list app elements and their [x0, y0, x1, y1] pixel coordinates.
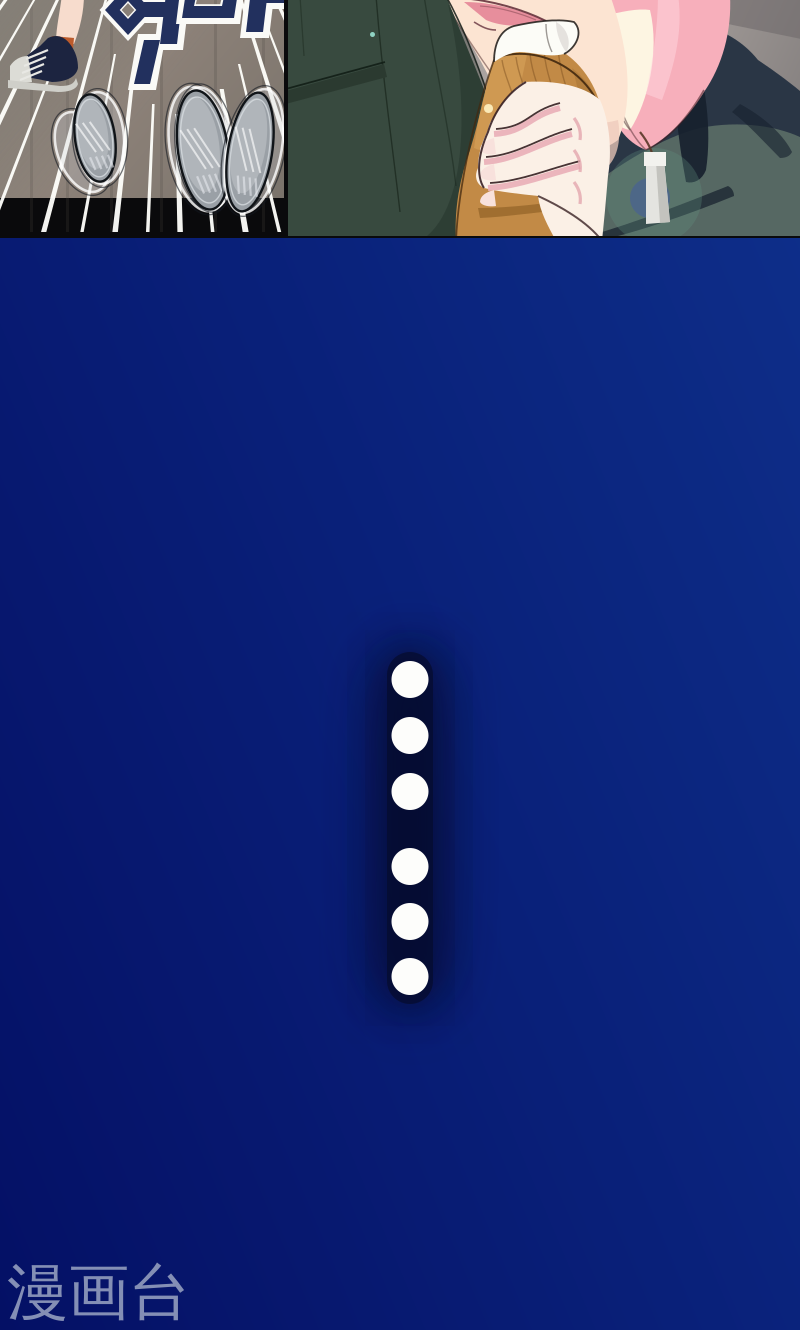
staticText: 漫画台	[7, 1255, 190, 1330]
